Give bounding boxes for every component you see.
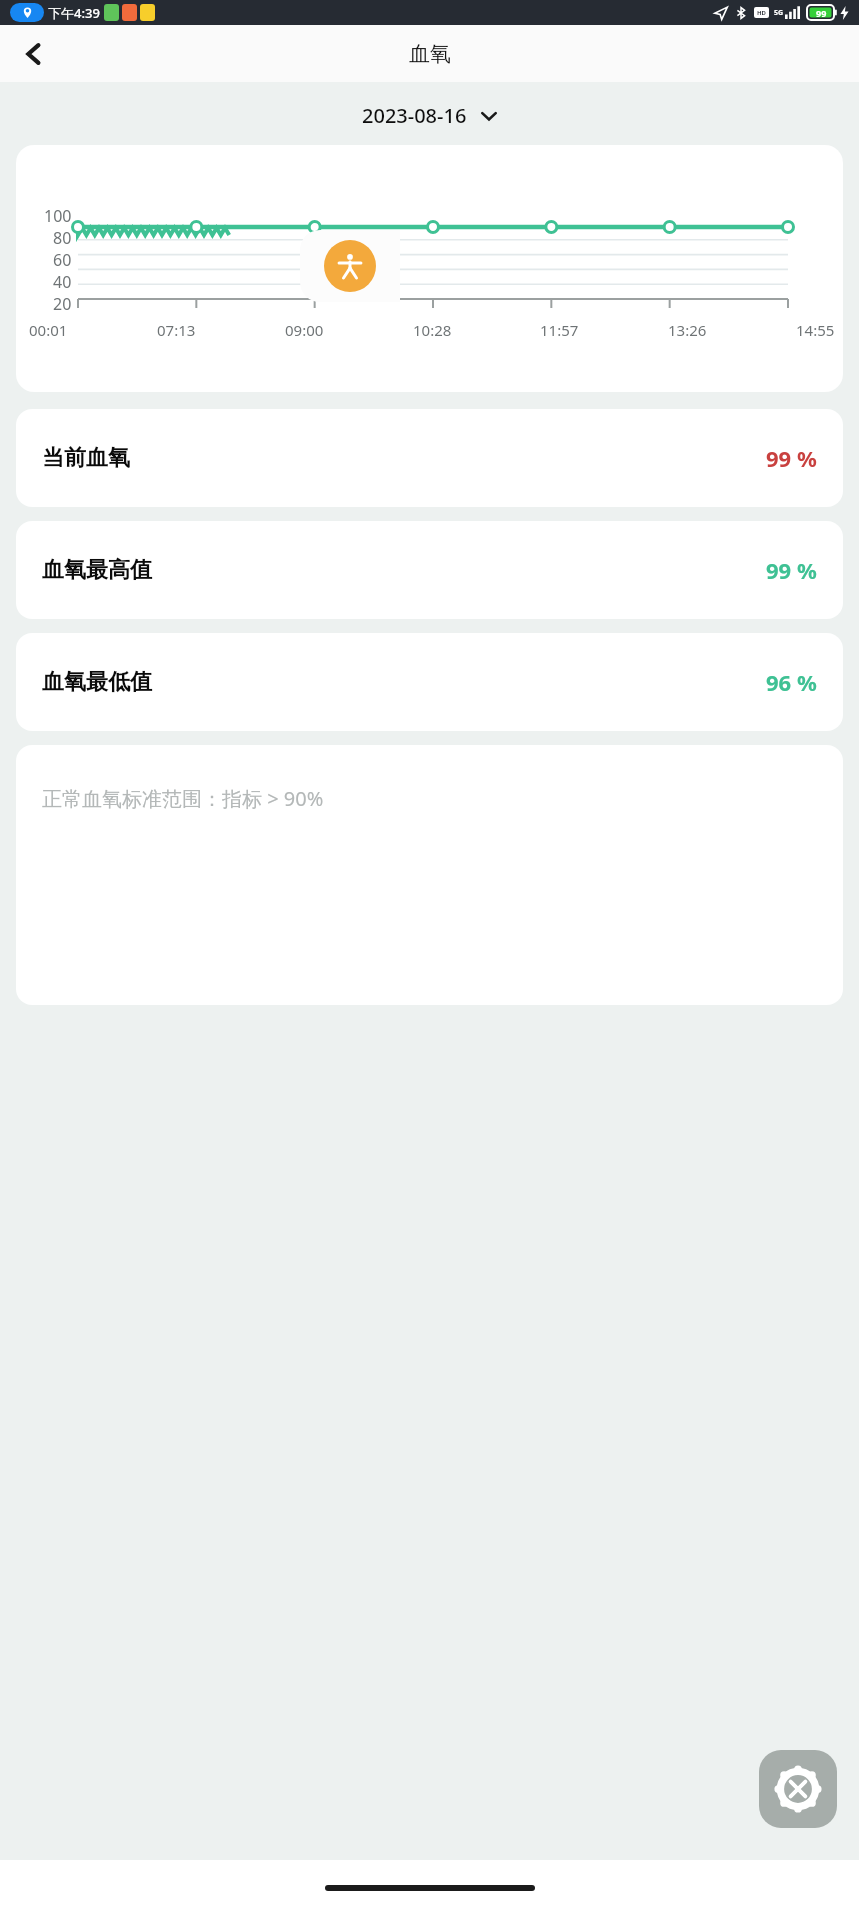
button[interactable]: Back [10,30,58,78]
staticText: 血氧最低值 [42,668,152,696]
staticText: 80 [53,227,72,249]
staticText: 00:01 [29,320,68,340]
staticText: 40 [53,271,72,293]
staticText: 96 % [766,667,817,697]
staticText: 血氧最高值 [42,556,152,584]
staticText: HD [757,9,766,17]
staticText: 下午4:39 [48,4,100,22]
button[interactable]: 2023-08-16 [0,102,859,129]
staticText: 2023-08-16 [362,102,467,129]
button[interactable]: Accessibility [300,230,400,302]
staticText: 当前血氧 [42,444,130,472]
staticText: 正常血氧标准范围：指标 > 90% [42,785,324,812]
button[interactable]: 血氧最低值 [16,633,843,731]
staticText: 60 [53,249,72,271]
button[interactable]: 正常血氧标准范围：指标 > 90% [16,745,843,1005]
staticText: 99 % [766,443,817,473]
button[interactable]: 100 [16,145,843,392]
staticText: 11:57 [540,320,579,340]
staticText: 5G [774,8,784,18]
staticText: 100 [44,205,72,227]
staticText: 07:13 [157,320,196,340]
staticText: 20 [53,293,72,314]
staticText: 99 [816,7,827,19]
staticText: 10:28 [413,320,452,340]
staticText: 血氧 [409,41,451,67]
button[interactable]: 血氧最高值 [16,521,843,619]
staticText: 13:26 [668,320,707,340]
staticText: 99 % [766,555,817,585]
button[interactable]: Developer tools [759,1750,837,1828]
button[interactable]: 当前血氧 [16,409,843,507]
staticText: 09:00 [285,320,324,340]
staticText: 14:55 [796,320,835,340]
